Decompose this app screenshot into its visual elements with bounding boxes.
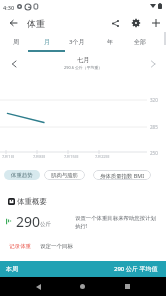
button[interactable]: Share xyxy=(106,14,124,32)
staticText: 公斤 xyxy=(40,221,51,228)
button[interactable]: 周 xyxy=(0,32,32,52)
button[interactable]: Home xyxy=(72,277,93,296)
button[interactable]: Back xyxy=(28,277,49,296)
staticText: 身体质量指数 BMI xyxy=(100,172,144,179)
staticText: 七月 xyxy=(77,56,90,64)
staticText: 285 xyxy=(150,124,158,130)
staticText: 设定一个目标 xyxy=(40,243,73,250)
staticText: 月 xyxy=(44,38,50,46)
button[interactable]: Recent apps xyxy=(117,277,138,296)
staticText: 7月8日 xyxy=(33,154,46,159)
button[interactable]: 体重趋势 xyxy=(4,170,40,180)
button[interactable]: 记录体重 xyxy=(5,240,35,253)
button[interactable]: 本周 xyxy=(0,261,166,277)
staticText: 体重趋势 xyxy=(11,172,33,179)
staticText: 7月1日 xyxy=(2,154,15,159)
button[interactable]: Back xyxy=(4,14,22,32)
button[interactable]: 全部 xyxy=(124,32,156,52)
staticText: 体重概要 xyxy=(17,197,47,206)
button[interactable]: Add xyxy=(147,14,165,32)
staticText: 320 xyxy=(150,97,158,103)
staticText: 7月15日 xyxy=(64,154,79,159)
staticText: 250 xyxy=(150,150,158,156)
button[interactable]: 设定一个目标 xyxy=(36,240,77,253)
button[interactable]: 月 xyxy=(31,32,63,52)
staticText: 3个月 xyxy=(69,38,85,46)
staticText: 记录体重 xyxy=(9,243,31,250)
button[interactable]: Next month xyxy=(144,55,161,72)
staticText: 周 xyxy=(13,38,19,46)
staticText: 290 xyxy=(16,212,41,231)
button[interactable]: Previous month xyxy=(5,55,22,72)
button[interactable]: 年 xyxy=(94,32,126,52)
staticText: 肌肉与脂肪 xyxy=(51,172,78,179)
button[interactable]: 3个月 xyxy=(61,32,93,52)
staticText: 4:30 xyxy=(3,4,15,12)
staticText: 本周 xyxy=(6,265,18,273)
staticText: 设置一个体重目标来帮助您按计划 执行! xyxy=(75,215,156,230)
staticText: 7月22日 xyxy=(95,154,110,159)
button[interactable]: 肌肉与脂肪 xyxy=(44,170,85,180)
staticText: 290 公斤 平均值 xyxy=(114,265,158,273)
staticText: 体重 xyxy=(27,18,45,29)
staticText: 全部 xyxy=(134,38,146,46)
staticText: 290.6 公斤（平均重） xyxy=(64,65,103,70)
button[interactable]: Settings xyxy=(127,14,145,32)
staticText: 年 xyxy=(107,38,113,46)
button[interactable]: 身体质量指数 BMI xyxy=(93,170,151,180)
